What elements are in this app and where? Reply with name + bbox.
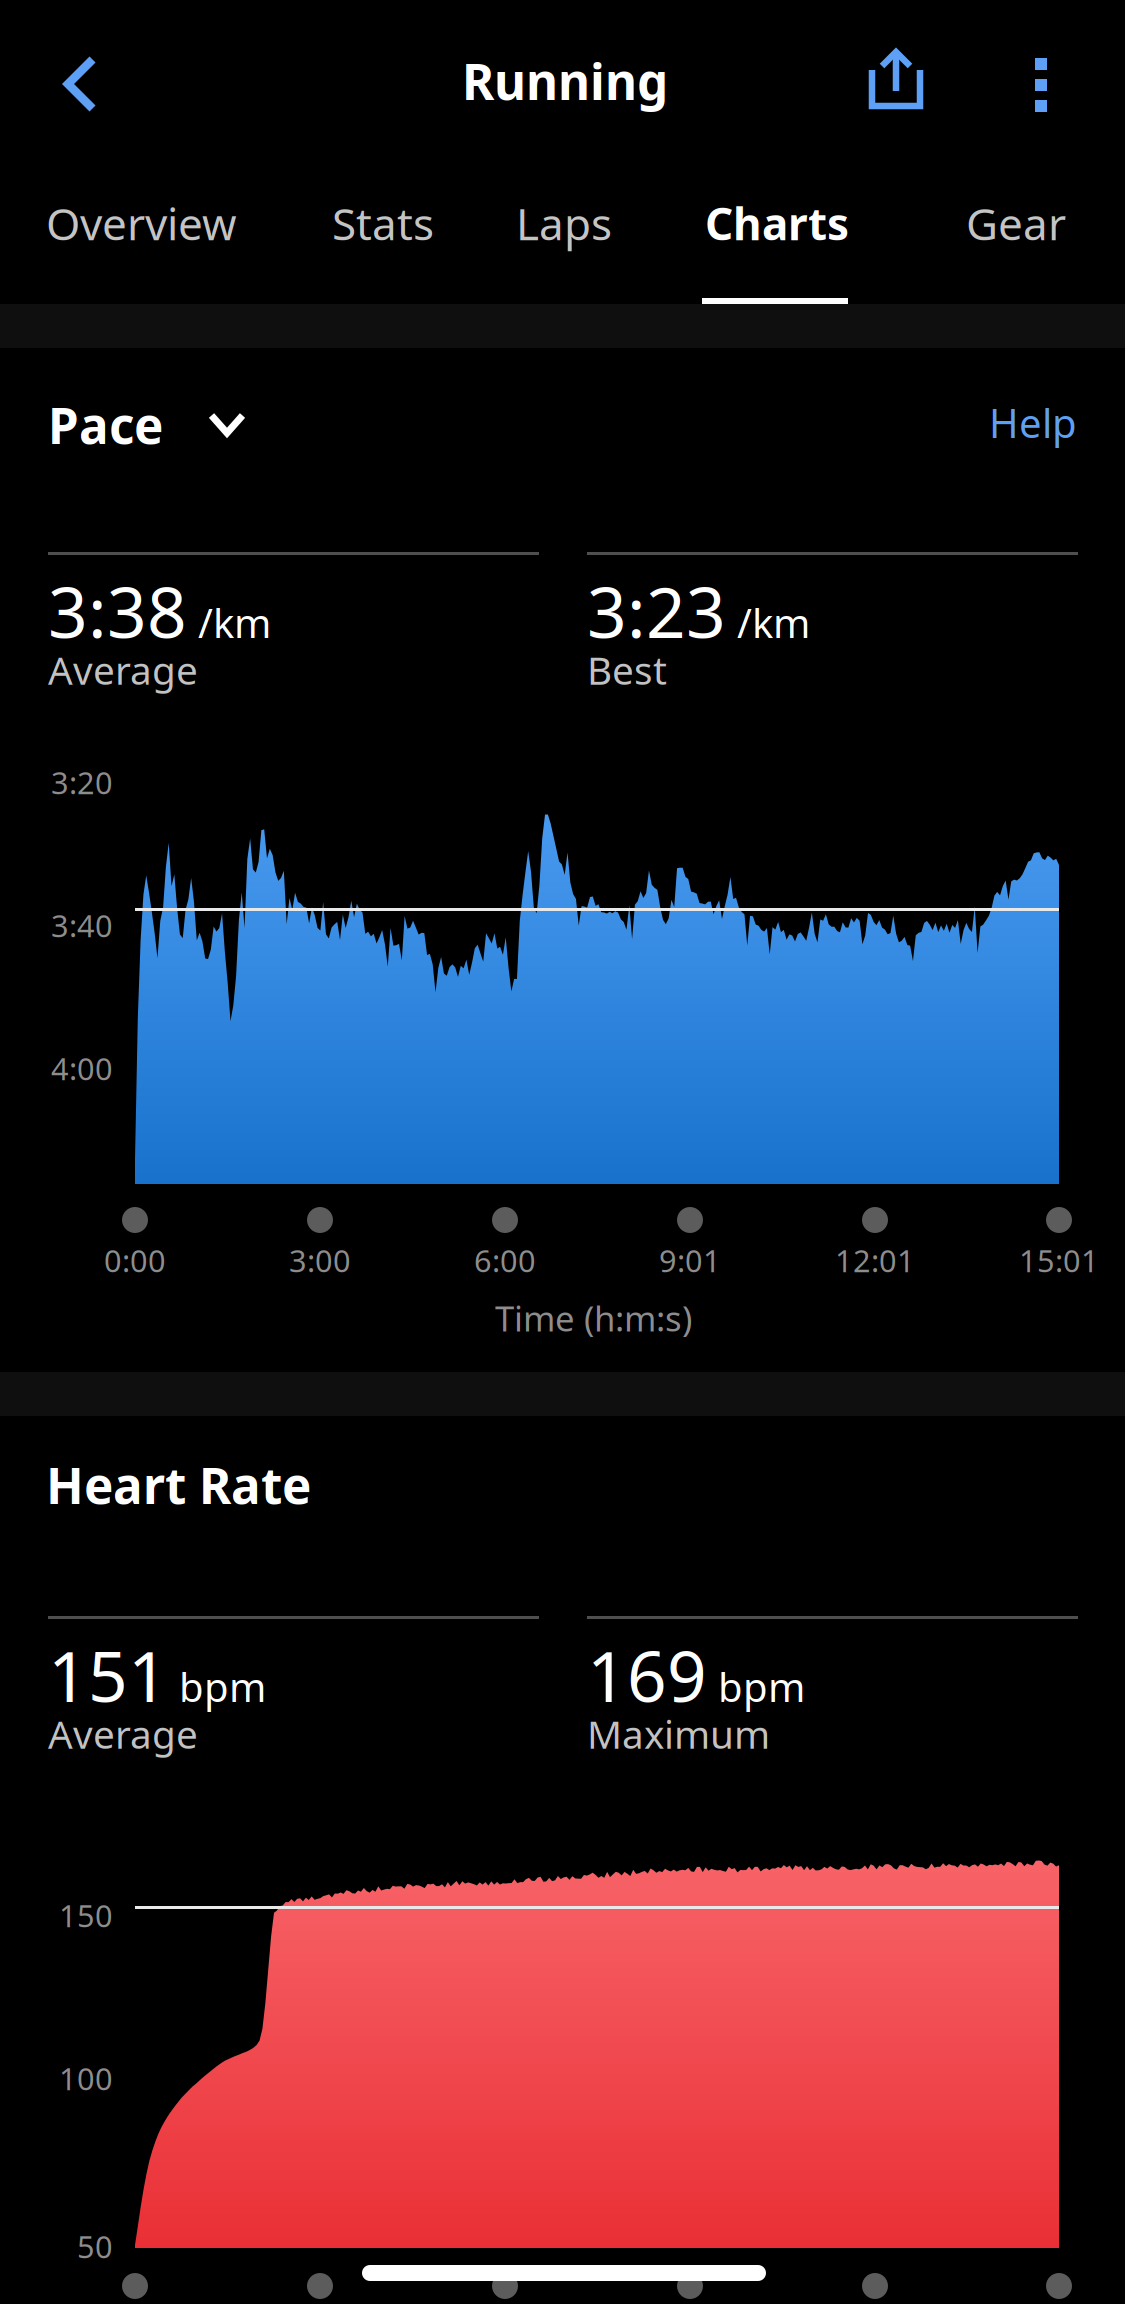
button[interactable]: Laps bbox=[496, 160, 632, 305]
button[interactable]: Charts bbox=[685, 160, 865, 305]
staticText: 50 bbox=[77, 2226, 113, 2267]
staticText: Average bbox=[48, 644, 198, 695]
staticText: Stats bbox=[332, 194, 434, 252]
staticText: Heart Rate bbox=[46, 1452, 311, 1517]
button[interactable]: Back bbox=[15, 19, 145, 149]
button[interactable]: Stats bbox=[312, 160, 454, 305]
staticText: Time (h:m:s) bbox=[495, 1295, 692, 1341]
staticText: Help bbox=[989, 396, 1077, 449]
staticText: 169 bbox=[587, 1629, 707, 1721]
staticText: Average bbox=[48, 1708, 198, 1759]
staticText: 12:01 bbox=[835, 1240, 915, 1281]
staticText: 100 bbox=[59, 2058, 113, 2099]
staticText: 3:00 bbox=[289, 1240, 351, 1281]
button[interactable]: Pace bbox=[48, 380, 328, 474]
staticText: Pace bbox=[48, 392, 163, 457]
staticText: 150 bbox=[59, 1895, 113, 1936]
staticText: Running bbox=[462, 48, 668, 113]
staticText: bpm bbox=[718, 1660, 805, 1713]
button[interactable]: Overview bbox=[26, 160, 254, 305]
staticText: 3:23 bbox=[587, 565, 726, 657]
staticText: bpm bbox=[179, 1660, 266, 1713]
staticText: 9:01 bbox=[659, 1240, 721, 1281]
staticText: 4:00 bbox=[51, 1048, 113, 1089]
staticText: Charts bbox=[705, 194, 849, 252]
staticText: 151 bbox=[48, 1629, 168, 1721]
button[interactable]: Gear bbox=[946, 160, 1082, 305]
button[interactable]: Help bbox=[917, 380, 1077, 474]
staticText: 3:38 bbox=[48, 565, 187, 657]
staticText: Laps bbox=[516, 194, 612, 252]
staticText: /km bbox=[198, 596, 271, 649]
staticText: Maximum bbox=[587, 1708, 770, 1759]
staticText: Gear bbox=[966, 194, 1066, 252]
staticText: 0:00 bbox=[104, 1240, 166, 1281]
button[interactable]: More options bbox=[986, 20, 1096, 150]
staticText: 3:20 bbox=[51, 762, 113, 803]
staticText: Overview bbox=[46, 194, 237, 252]
staticText: 3:40 bbox=[51, 905, 113, 946]
staticText: 6:00 bbox=[474, 1240, 536, 1281]
staticText: 15:01 bbox=[1019, 1240, 1099, 1281]
staticText: Best bbox=[587, 644, 667, 695]
staticText: /km bbox=[737, 596, 810, 649]
button[interactable]: Share bbox=[836, 14, 956, 144]
